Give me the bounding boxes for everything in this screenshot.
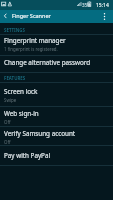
staticText: Off: [4, 139, 11, 145]
staticText: Verify Samsung account: [4, 129, 76, 138]
staticText: FEATURES: [4, 75, 26, 81]
staticText: SETTINGS: [4, 27, 25, 33]
button[interactable]: Web sign-in: [0, 107, 113, 127]
button[interactable]: Fingerprint manager: [0, 35, 113, 56]
button[interactable]: More options: [97, 10, 113, 23]
staticText: Web sign-in: [4, 109, 39, 118]
staticText: 35%: [82, 2, 91, 8]
button[interactable]: Verify Samsung account: [0, 127, 113, 146]
staticText: Change alternative password: [4, 58, 91, 67]
button[interactable]: Pay with PayPal: [0, 146, 113, 166]
staticText: Swipe: [4, 97, 17, 103]
staticText: Screen lock: [4, 87, 38, 96]
staticText: 15:14: [96, 2, 109, 9]
staticText: Pay with PayPal: [4, 151, 51, 160]
staticText: 1 fingerprint is registered.: [4, 46, 58, 52]
button[interactable]: Screen lock: [0, 83, 113, 107]
button[interactable]: Finger Scanner: [0, 10, 97, 23]
staticText: Off: [4, 119, 11, 125]
button[interactable]: Change alternative password: [0, 56, 113, 73]
staticText: Fingerprint manager: [4, 36, 66, 45]
staticText: Finger Scanner: [12, 12, 51, 19]
